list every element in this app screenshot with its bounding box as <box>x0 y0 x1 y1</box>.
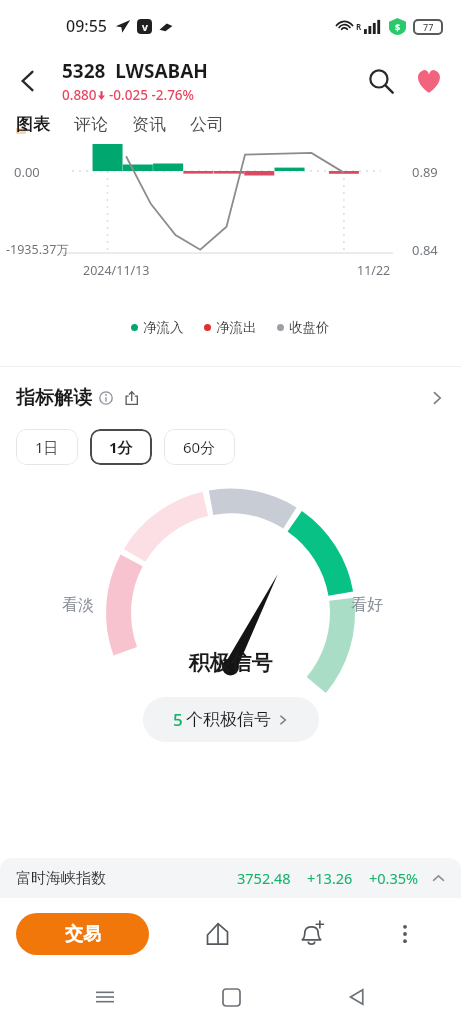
button[interactable]: Home <box>209 975 253 1019</box>
staticText: 公司 <box>190 114 224 135</box>
staticText: -0.025 -2.76% <box>109 86 195 104</box>
staticText: 2024/11/13 <box>83 262 150 279</box>
staticText: 5 <box>173 708 183 731</box>
button[interactable]: 公司 <box>190 114 248 135</box>
staticText: +0.35% <box>369 868 419 888</box>
staticText: 收盘价 <box>289 319 330 336</box>
staticText: 0.89 <box>412 163 438 181</box>
staticText: 指标解读 <box>16 386 92 410</box>
staticText: 净流入 <box>143 319 184 336</box>
staticText: $ <box>395 21 401 33</box>
button[interactable]: 指标解读 <box>0 367 461 429</box>
staticText: 净流出 <box>216 319 257 336</box>
button[interactable]: 评论 <box>74 114 132 135</box>
button[interactable]: Share <box>123 389 141 407</box>
staticText: 77 <box>423 21 434 33</box>
button[interactable]: Favorite <box>405 57 453 105</box>
staticText: 图表 <box>16 114 50 135</box>
staticText: 看淡 <box>62 595 94 615</box>
staticText: 11/22 <box>357 262 391 279</box>
button[interactable]: 60分 <box>164 429 235 465</box>
staticText: 3752.48 <box>237 868 291 888</box>
button[interactable]: Back <box>6 59 50 103</box>
staticText: 1日 <box>35 437 59 457</box>
staticText: 1分 <box>109 437 133 457</box>
staticText: 5328 LWSABAH <box>62 58 208 84</box>
staticText: 富时海峡指数 <box>16 869 106 888</box>
button[interactable]: 5 <box>143 697 319 742</box>
staticText: -1935.37万 <box>6 241 69 258</box>
staticText: V <box>142 21 148 33</box>
button[interactable]: 富时海峡指数 <box>0 858 461 898</box>
staticText: 评论 <box>74 114 108 135</box>
button[interactable]: Add alert <box>285 908 337 960</box>
staticText: 0.00 <box>14 163 40 181</box>
button[interactable]: 1日 <box>16 429 78 465</box>
staticText: 交易 <box>65 923 101 946</box>
button[interactable]: Back <box>335 975 379 1019</box>
staticText: R <box>356 21 362 32</box>
button[interactable]: More options <box>379 908 431 960</box>
staticText: 09:55 <box>66 15 107 37</box>
button[interactable]: 资讯 <box>132 114 190 135</box>
staticText: 看好 <box>351 595 383 615</box>
staticText: 个积极信号 <box>186 709 271 730</box>
staticText: 60分 <box>183 437 216 457</box>
staticText: 0.84 <box>412 241 438 259</box>
staticText: 资讯 <box>132 114 166 135</box>
button[interactable]: 图表 <box>16 114 74 135</box>
button[interactable]: 交易 <box>16 913 149 955</box>
button[interactable]: Recents <box>83 975 127 1019</box>
button[interactable]: Search <box>357 57 405 105</box>
staticText: 0.880 <box>62 86 97 104</box>
button[interactable]: 1分 <box>90 429 152 465</box>
button[interactable]: Chart <box>191 908 243 960</box>
staticText: +13.26 <box>307 868 353 888</box>
staticText: 积极信号 <box>0 650 461 676</box>
